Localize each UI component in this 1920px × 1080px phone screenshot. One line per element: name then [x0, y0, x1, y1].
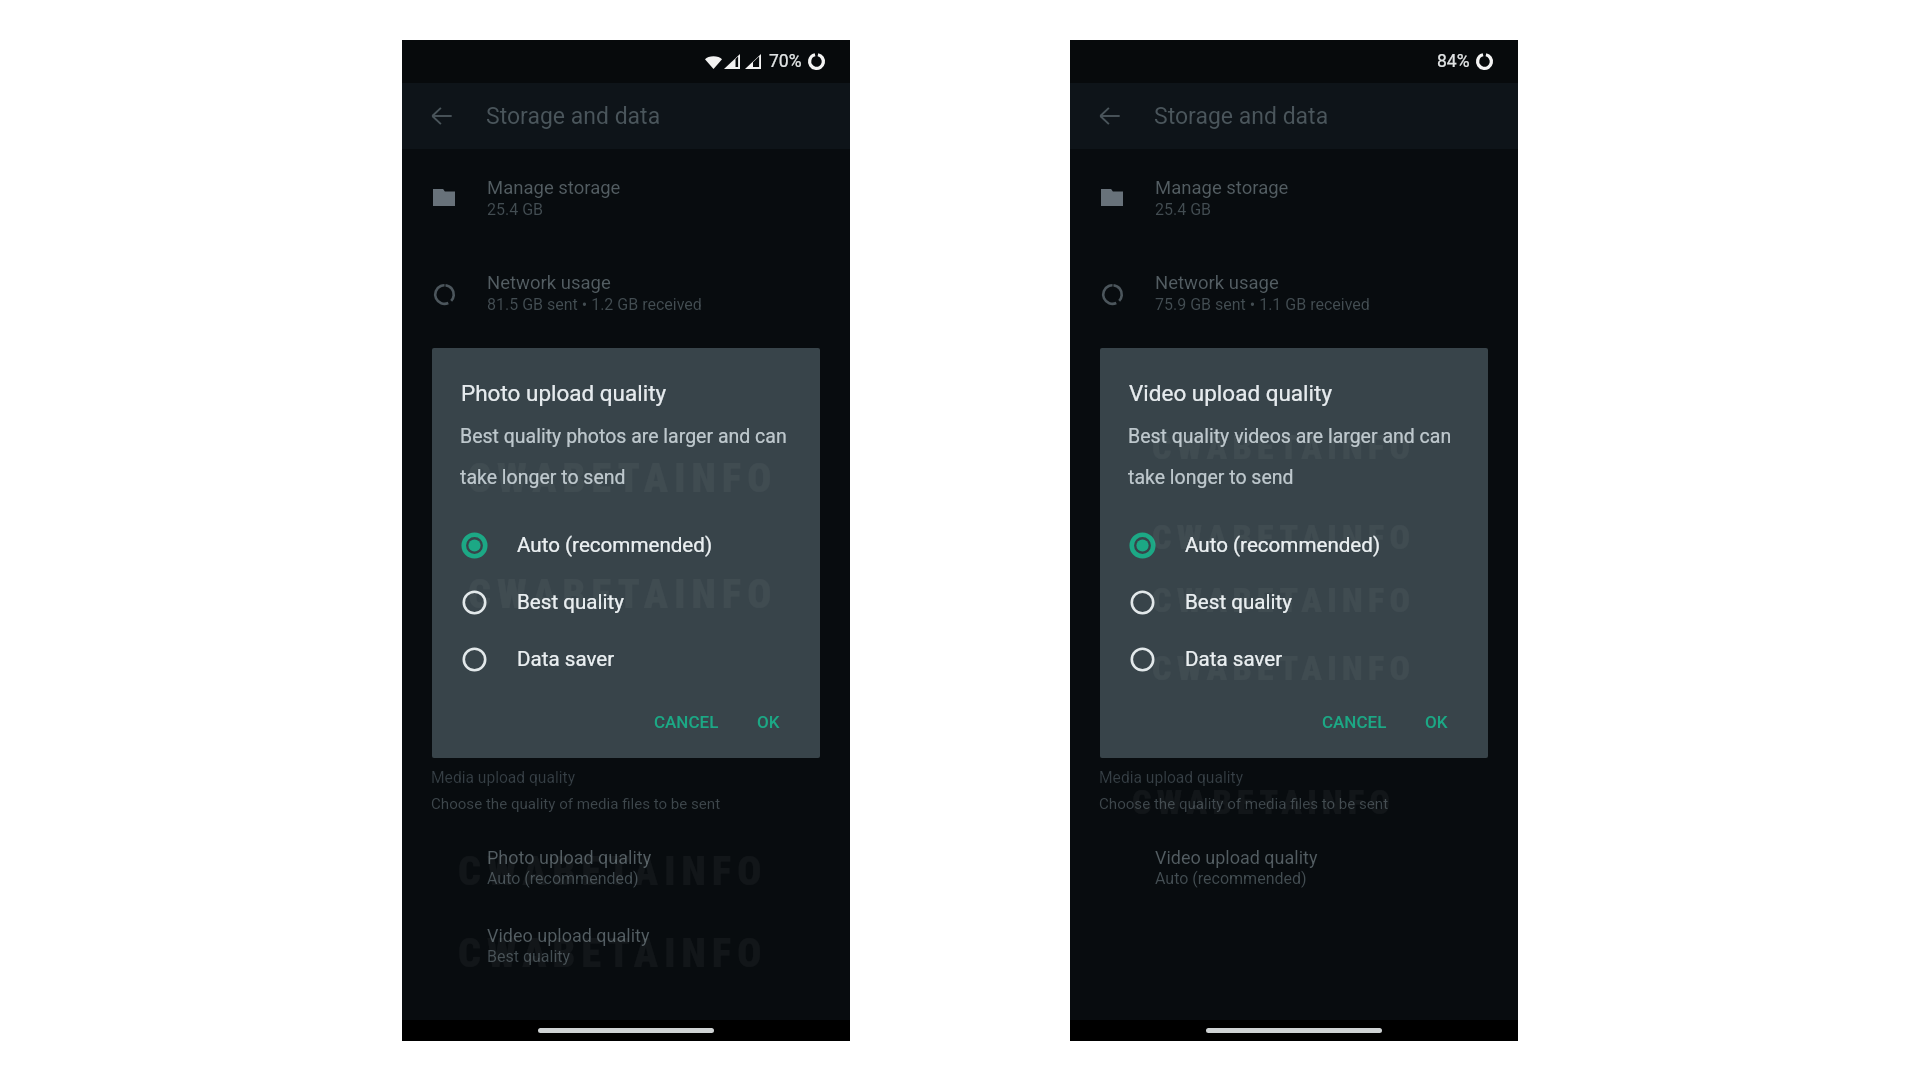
- staticText: 25.4 GB: [487, 200, 544, 219]
- staticText: 25.4 GB: [1155, 200, 1212, 219]
- button[interactable]: Best quality: [1100, 574, 1488, 630]
- staticText: Choose the quality of media files to be …: [431, 795, 721, 813]
- button[interactable]: Manage storage: [1070, 160, 1518, 235]
- staticText: 81.5 GB sent • 1.2 GB received: [487, 295, 702, 314]
- staticText: Video upload quality: [1155, 847, 1318, 868]
- staticText: CWABETAINFO: [458, 848, 768, 895]
- staticText: Network usage: [487, 272, 611, 294]
- staticText: Video upload quality: [487, 925, 650, 946]
- button[interactable]: Auto (recommended): [1100, 517, 1488, 573]
- staticText: Storage and data: [486, 103, 661, 130]
- staticText: Manage storage: [487, 177, 621, 199]
- button[interactable]: OK: [1415, 703, 1458, 741]
- button[interactable]: Manage storage: [402, 160, 850, 235]
- staticText: CWABETAINFO: [1132, 782, 1396, 822]
- staticText: Best quality: [517, 590, 624, 614]
- button[interactable]: CANCEL: [644, 703, 729, 741]
- button[interactable]: Auto (recommended): [432, 517, 820, 573]
- staticText: CANCEL: [1322, 712, 1387, 732]
- staticText: Media upload quality: [431, 769, 576, 787]
- staticText: CWABETAINFO: [468, 455, 778, 502]
- button[interactable]: Data saver: [1100, 631, 1488, 687]
- button[interactable]: Video upload quality: [402, 908, 850, 978]
- button[interactable]: Best quality: [432, 574, 820, 630]
- staticText: Best quality: [1185, 590, 1292, 614]
- button[interactable]: Network usage: [402, 255, 850, 330]
- staticText: Best quality photos are larger and can t…: [460, 425, 802, 489]
- staticText: Video upload quality: [1129, 380, 1333, 406]
- staticText: CWABETAINFO: [458, 930, 768, 977]
- button[interactable]: Back: [1092, 98, 1128, 134]
- staticText: Auto (recommended): [517, 533, 713, 557]
- staticText: CWABETAINFO: [1152, 648, 1416, 688]
- staticText: Photo upload quality: [487, 847, 652, 868]
- staticText: Auto (recommended): [1155, 869, 1307, 888]
- button[interactable]: Data saver: [432, 631, 820, 687]
- staticText: Data saver: [1185, 647, 1283, 671]
- staticText: OK: [757, 712, 780, 732]
- staticText: CWABETAINFO: [1152, 517, 1416, 557]
- staticText: Manage storage: [1155, 177, 1289, 199]
- staticText: OK: [1425, 712, 1448, 732]
- button[interactable]: OK: [747, 703, 790, 741]
- staticText: 70%: [769, 51, 802, 72]
- staticText: 75.9 GB sent • 1.1 GB received: [1155, 295, 1370, 314]
- staticText: Media upload quality: [1099, 769, 1244, 787]
- staticText: Best quality: [487, 947, 571, 966]
- staticText: Photo upload quality: [461, 380, 667, 406]
- button[interactable]: Photo upload quality: [402, 830, 850, 900]
- staticText: Auto (recommended): [487, 869, 639, 888]
- staticText: CANCEL: [654, 712, 719, 732]
- button[interactable]: Back: [424, 98, 460, 134]
- staticText: CWABETAINFO: [1152, 580, 1416, 620]
- staticText: Auto (recommended): [1185, 533, 1381, 557]
- staticText: CWABETAINFO: [1152, 427, 1416, 467]
- staticText: 84%: [1437, 51, 1470, 72]
- button[interactable]: CANCEL: [1312, 703, 1397, 741]
- button[interactable]: Network usage: [1070, 255, 1518, 330]
- button[interactable]: Video upload quality: [1070, 830, 1518, 900]
- staticText: Choose the quality of media files to be …: [1099, 795, 1389, 813]
- staticText: Data saver: [517, 647, 615, 671]
- staticText: Best quality videos are larger and can t…: [1128, 425, 1470, 489]
- staticText: CWABETAINFO: [468, 571, 778, 618]
- staticText: Network usage: [1155, 272, 1279, 294]
- staticText: Storage and data: [1154, 103, 1329, 130]
